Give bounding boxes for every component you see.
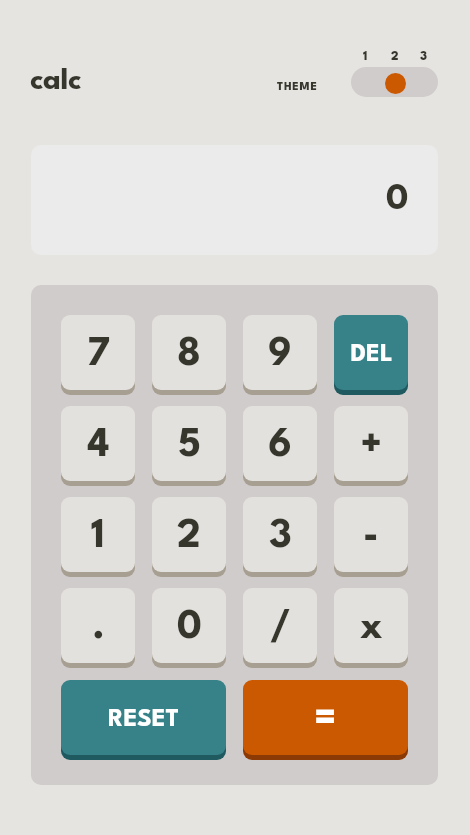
staticText: RESET — [108, 708, 179, 732]
button[interactable]: 3 — [243, 497, 317, 577]
button[interactable]: 7 — [61, 315, 135, 395]
staticText: = — [314, 700, 337, 740]
staticText: + — [360, 427, 383, 466]
button[interactable]: 2 — [380, 51, 409, 63]
staticText: 0 — [177, 609, 202, 648]
staticText: 1 — [91, 518, 105, 557]
staticText: / — [270, 609, 291, 648]
staticText: 1 — [363, 51, 368, 63]
button[interactable]: x — [334, 588, 408, 668]
button[interactable]: . — [61, 588, 135, 668]
staticText: 4 — [87, 427, 110, 466]
staticText: 3 — [269, 518, 292, 557]
button[interactable]: 1 — [61, 497, 135, 577]
button[interactable]: 1 — [351, 51, 380, 63]
button[interactable]: Theme selector — [351, 67, 438, 97]
staticText: 9 — [268, 336, 292, 375]
staticText: 2 — [391, 51, 399, 63]
button[interactable]: - — [334, 497, 408, 577]
staticText: - — [363, 518, 379, 557]
button[interactable]: 0 — [152, 588, 226, 668]
staticText: 5 — [178, 427, 201, 466]
button[interactable]: = — [243, 680, 408, 760]
button[interactable]: 5 — [152, 406, 226, 486]
button[interactable]: calc — [30, 67, 82, 96]
staticText: x — [360, 609, 383, 648]
button[interactable]: 6 — [243, 406, 317, 486]
button[interactable]: / — [243, 588, 317, 668]
button[interactable]: DEL — [334, 315, 408, 395]
staticText: 8 — [177, 336, 201, 375]
button[interactable]: 9 — [243, 315, 317, 395]
staticText: 6 — [268, 427, 292, 466]
button[interactable]: 3 — [409, 51, 438, 63]
staticText: calc — [30, 67, 82, 96]
button[interactable]: 4 — [61, 406, 135, 486]
staticText: 0 — [386, 182, 409, 217]
staticText: 7 — [87, 336, 110, 375]
button[interactable]: 8 — [152, 315, 226, 395]
staticText: 3 — [420, 51, 428, 63]
staticText: . — [92, 609, 105, 648]
button[interactable]: + — [334, 406, 408, 486]
button[interactable]: 2 — [152, 497, 226, 577]
staticText: THEME — [277, 82, 318, 93]
staticText: DEL — [350, 343, 393, 367]
button[interactable]: Result display — [31, 145, 438, 255]
button[interactable]: RESET — [61, 680, 226, 760]
staticText: 2 — [177, 518, 201, 557]
